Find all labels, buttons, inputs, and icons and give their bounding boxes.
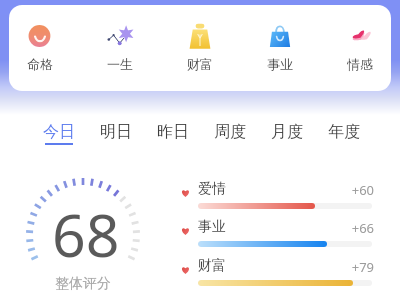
staticText: 明日: [100, 122, 132, 142]
button[interactable]: 情感: [320, 23, 400, 72]
staticText: 一生: [107, 56, 133, 72]
button[interactable]: 财富: [180, 257, 375, 291]
staticText: 今日: [43, 122, 75, 142]
button[interactable]: 今日: [43, 122, 75, 145]
button[interactable]: 事业: [240, 23, 320, 72]
staticText: 命格: [27, 56, 53, 72]
button[interactable]: 月度: [271, 122, 303, 145]
button[interactable]: 昨日: [157, 122, 189, 145]
button[interactable]: 年度: [328, 122, 360, 145]
button[interactable]: 周度: [214, 122, 246, 145]
button[interactable]: 爱情: [180, 180, 375, 214]
staticText: 整体评分: [55, 275, 111, 293]
staticText: 月度: [271, 122, 303, 142]
button[interactable]: 事业: [180, 218, 375, 252]
button[interactable]: 财富: [160, 23, 240, 72]
staticText: 周度: [214, 122, 246, 142]
staticText: +66: [180, 219, 374, 237]
button[interactable]: 命格: [0, 23, 80, 72]
staticText: 爱情: [198, 180, 226, 198]
staticText: 年度: [328, 122, 360, 142]
staticText: 事业: [267, 56, 293, 72]
staticText: 68: [52, 194, 120, 274]
staticText: +60: [180, 181, 374, 199]
button[interactable]: 明日: [100, 122, 132, 145]
staticText: 财富: [198, 257, 226, 275]
button[interactable]: 一生: [80, 23, 160, 72]
staticText: +79: [180, 258, 374, 276]
staticText: 昨日: [157, 122, 189, 142]
staticText: 事业: [198, 218, 226, 236]
staticText: 财富: [187, 56, 213, 72]
staticText: 情感: [347, 56, 373, 72]
